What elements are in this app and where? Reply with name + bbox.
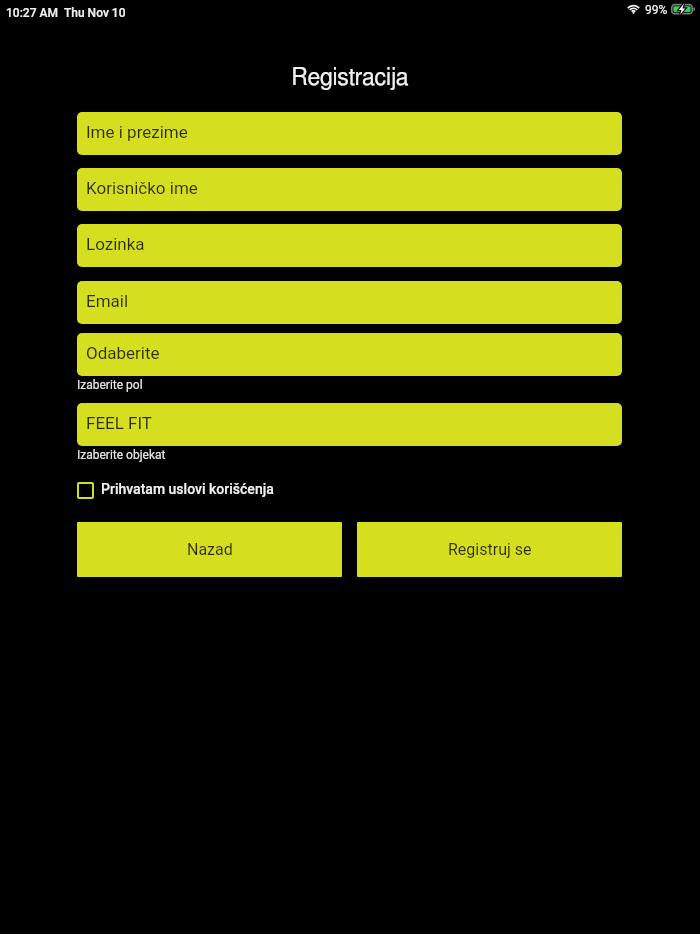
button[interactable]: Email bbox=[77, 281, 622, 324]
staticText: Registruj se bbox=[448, 540, 532, 559]
staticText: 99% bbox=[645, 3, 668, 17]
other: Battery 99 percent, charging bbox=[671, 4, 695, 15]
button[interactable]: Nazad bbox=[77, 522, 342, 577]
button[interactable]: Odaberite bbox=[77, 333, 622, 376]
staticText: Registracija bbox=[0, 67, 700, 90]
button[interactable]: Korisničko ime bbox=[77, 168, 622, 211]
staticText: Nazad bbox=[187, 540, 233, 559]
staticText: Thu Nov 10 bbox=[64, 6, 126, 20]
staticText: FEEL FIT bbox=[86, 413, 153, 433]
other: Wi-Fi bbox=[627, 4, 640, 14]
staticText: Izaberite objekat bbox=[77, 448, 166, 462]
staticText: Lozinka bbox=[86, 234, 145, 254]
button[interactable]: Lozinka bbox=[77, 224, 622, 267]
staticText: Ime i prezime bbox=[86, 122, 188, 142]
staticText: Email bbox=[86, 291, 129, 311]
button[interactable]: Registruj se bbox=[357, 522, 622, 577]
button[interactable]: Ime i prezime bbox=[77, 112, 622, 155]
staticText: Odaberite bbox=[86, 343, 160, 363]
staticText: Korisničko ime bbox=[86, 178, 198, 198]
staticText: 10:27 AM bbox=[6, 6, 58, 20]
button[interactable]: Prihvatam uslovi korišćenja bbox=[77, 480, 274, 501]
staticText: Prihvatam uslovi korišćenja bbox=[101, 481, 274, 497]
button[interactable]: FEEL FIT bbox=[77, 403, 622, 446]
staticText: Izaberite pol bbox=[77, 378, 143, 392]
